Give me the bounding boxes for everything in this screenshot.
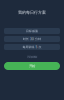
staticText: 时长 30 分钟 (23, 37, 41, 41)
staticText: 开始 (29, 64, 35, 68)
button[interactable]: 时长 30 分钟 (4, 36, 60, 42)
staticText: 我的每日行方案 (18, 10, 46, 15)
button[interactable]: 目标减脂 (4, 28, 60, 34)
staticText: 已同步更新 (27, 55, 37, 58)
staticText: 目标减脂 (26, 29, 38, 33)
button[interactable]: 每周训练 5 次 (4, 44, 60, 50)
staticText: 每周训练 5 次 (22, 45, 41, 49)
button[interactable]: 开始 (4, 62, 60, 70)
